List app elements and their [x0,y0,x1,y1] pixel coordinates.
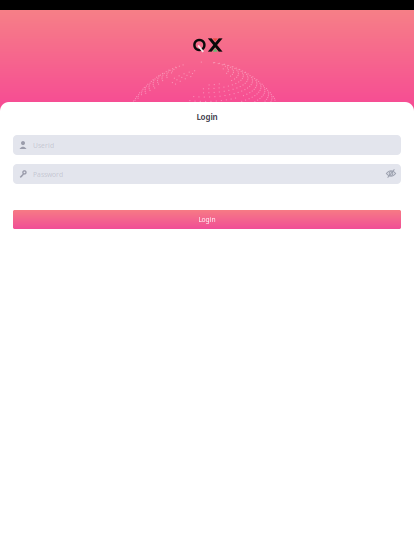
staticText: Userid [33,141,54,150]
staticText: Login [196,112,217,122]
staticText: Password [33,170,63,179]
button[interactable]: Login [13,210,401,229]
staticText: Login [198,215,215,224]
